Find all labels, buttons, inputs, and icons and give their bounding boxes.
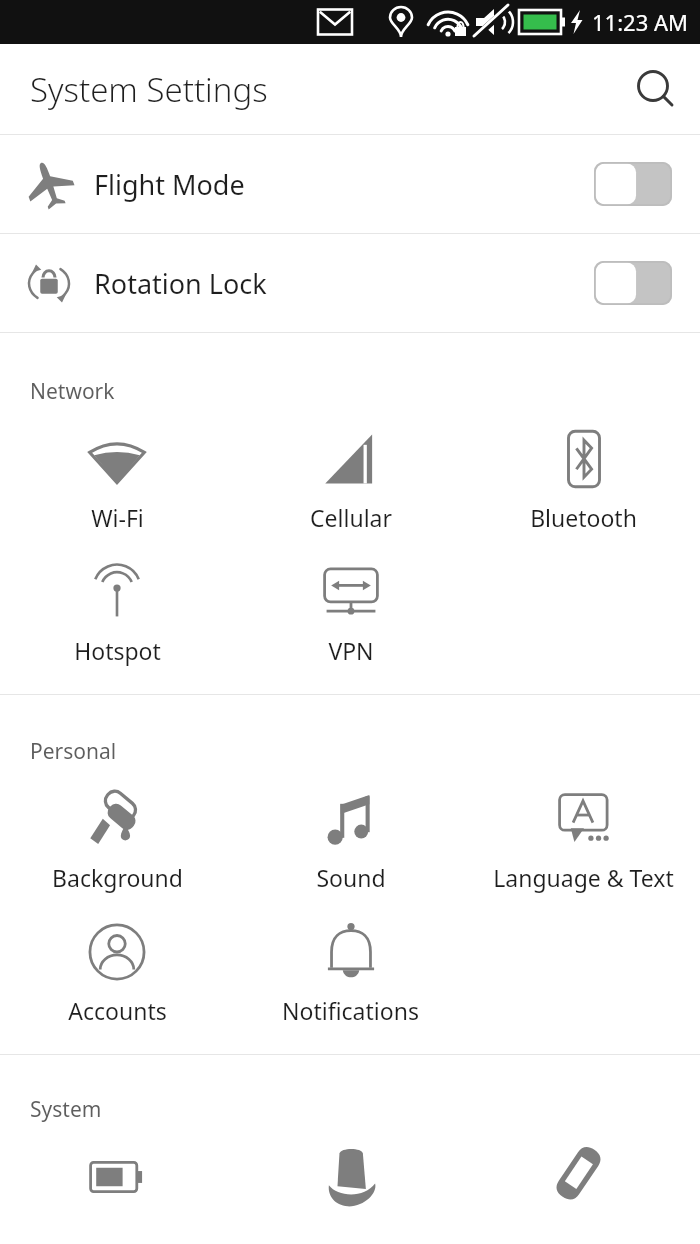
staticText: Bluetooth	[530, 502, 637, 533]
staticText: Background	[52, 862, 183, 893]
staticText: System Settings	[30, 67, 268, 112]
button[interactable]: Background	[0, 784, 234, 895]
button[interactable]: Cellular	[234, 424, 467, 535]
staticText: Cellular	[310, 502, 392, 533]
staticText: Wi-Fi	[91, 502, 144, 533]
button[interactable]: Hotspot	[0, 557, 234, 668]
staticText: VPN	[328, 635, 374, 666]
button[interactable]	[467, 1142, 700, 1222]
staticText: Rotation Lock	[94, 265, 594, 302]
button[interactable]: Wi-Fi	[0, 424, 234, 535]
staticText: Flight Mode	[94, 166, 594, 203]
button[interactable]: Rotation Lock	[0, 234, 700, 332]
staticText: Accounts	[68, 995, 167, 1026]
button[interactable]: VPN	[234, 557, 467, 668]
button[interactable]: Language & Text	[467, 784, 700, 895]
button[interactable]	[234, 1142, 467, 1222]
button[interactable]: Accounts	[0, 917, 234, 1028]
button[interactable]: Bluetooth	[467, 424, 700, 535]
staticText: System	[30, 1095, 102, 1124]
staticText: Sound	[316, 862, 386, 893]
button[interactable]	[0, 1142, 234, 1222]
staticText: Hotspot	[74, 635, 161, 666]
button[interactable]: Search	[626, 60, 684, 118]
staticText: Notifications	[282, 995, 419, 1026]
button[interactable]: Notifications	[234, 917, 467, 1028]
staticText: Network	[30, 377, 115, 406]
staticText: Personal	[30, 737, 117, 766]
button[interactable]: Flight Mode	[0, 135, 700, 233]
staticText: Language & Text	[493, 862, 674, 893]
button[interactable]: Sound	[234, 784, 467, 895]
staticText: 11:23 AM	[592, 7, 688, 37]
